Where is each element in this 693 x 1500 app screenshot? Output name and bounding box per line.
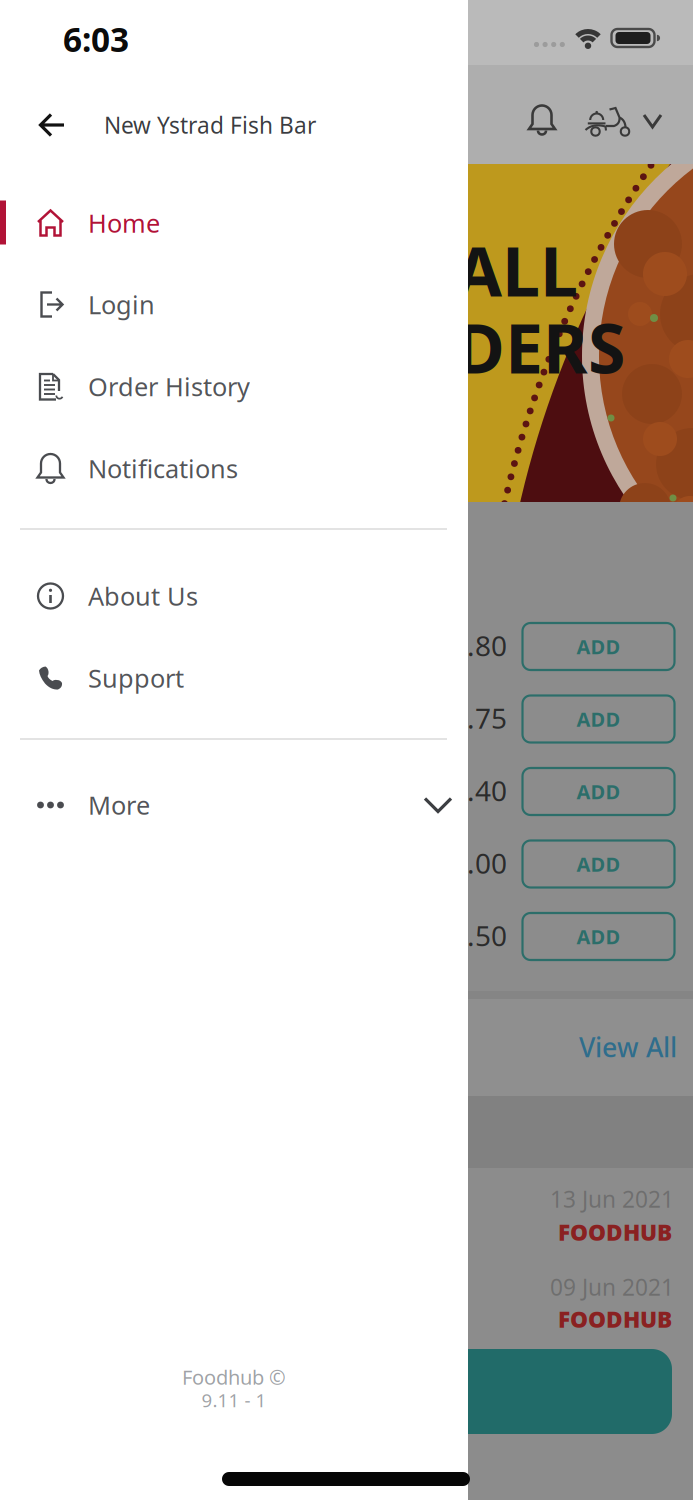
button[interactable]: ADD	[522, 840, 674, 887]
button[interactable]: Delivery	[581, 100, 635, 140]
staticText: 13 Jun 2021	[550, 1184, 674, 1214]
staticText: 5.00	[451, 844, 507, 882]
staticText: Foodhub ©	[182, 1364, 286, 1390]
staticText: Home	[88, 206, 160, 240]
staticText: View All	[579, 1029, 677, 1065]
staticText: Support	[88, 661, 184, 695]
button[interactable]: Home	[0, 187, 468, 259]
staticText: ADD	[576, 633, 620, 660]
button[interactable]: Order	[40, 1349, 672, 1434]
button[interactable]: About Us	[0, 560, 468, 632]
button[interactable]: ADD	[522, 768, 674, 815]
button[interactable]: Notifications	[0, 432, 468, 504]
staticText: 4.80	[451, 627, 507, 664]
button[interactable]: View All	[477, 1029, 677, 1065]
staticText: More	[88, 788, 150, 822]
staticText: 5.75	[451, 699, 507, 737]
staticText: 6:03	[63, 17, 129, 61]
button[interactable]: Notifications	[520, 98, 564, 142]
button[interactable]: Expand	[637, 106, 667, 136]
button[interactable]: Support	[0, 642, 468, 714]
staticText: ON ALL	[328, 225, 578, 315]
staticText: Notifications	[88, 452, 238, 485]
button[interactable]: Login	[0, 268, 468, 340]
button[interactable]: ADD	[522, 623, 674, 670]
button[interactable]: ADD	[522, 913, 674, 960]
staticText: FOODHUB	[558, 1217, 672, 1247]
button[interactable]: Order History	[0, 350, 468, 422]
staticText: Login	[88, 288, 155, 321]
staticText: 8.50	[451, 917, 507, 954]
staticText: ADD	[576, 706, 620, 732]
staticText: New Ystrad Fish Bar	[104, 110, 316, 140]
staticText: 9.11 - 1	[201, 1388, 266, 1412]
staticText: 7.40	[451, 772, 507, 809]
staticText: About Us	[88, 579, 198, 613]
staticText: ORDERS	[356, 302, 625, 392]
button[interactable]: Back	[30, 103, 74, 147]
button[interactable]: More	[0, 769, 468, 841]
staticText: ADD	[576, 851, 620, 877]
button[interactable]: ADD	[522, 695, 674, 742]
staticText: ADD	[576, 778, 620, 805]
staticText: Order History	[88, 370, 250, 403]
staticText: FOODHUB	[558, 1304, 672, 1334]
staticText: ADD	[576, 923, 620, 950]
staticText: 09 Jun 2021	[550, 1272, 674, 1302]
